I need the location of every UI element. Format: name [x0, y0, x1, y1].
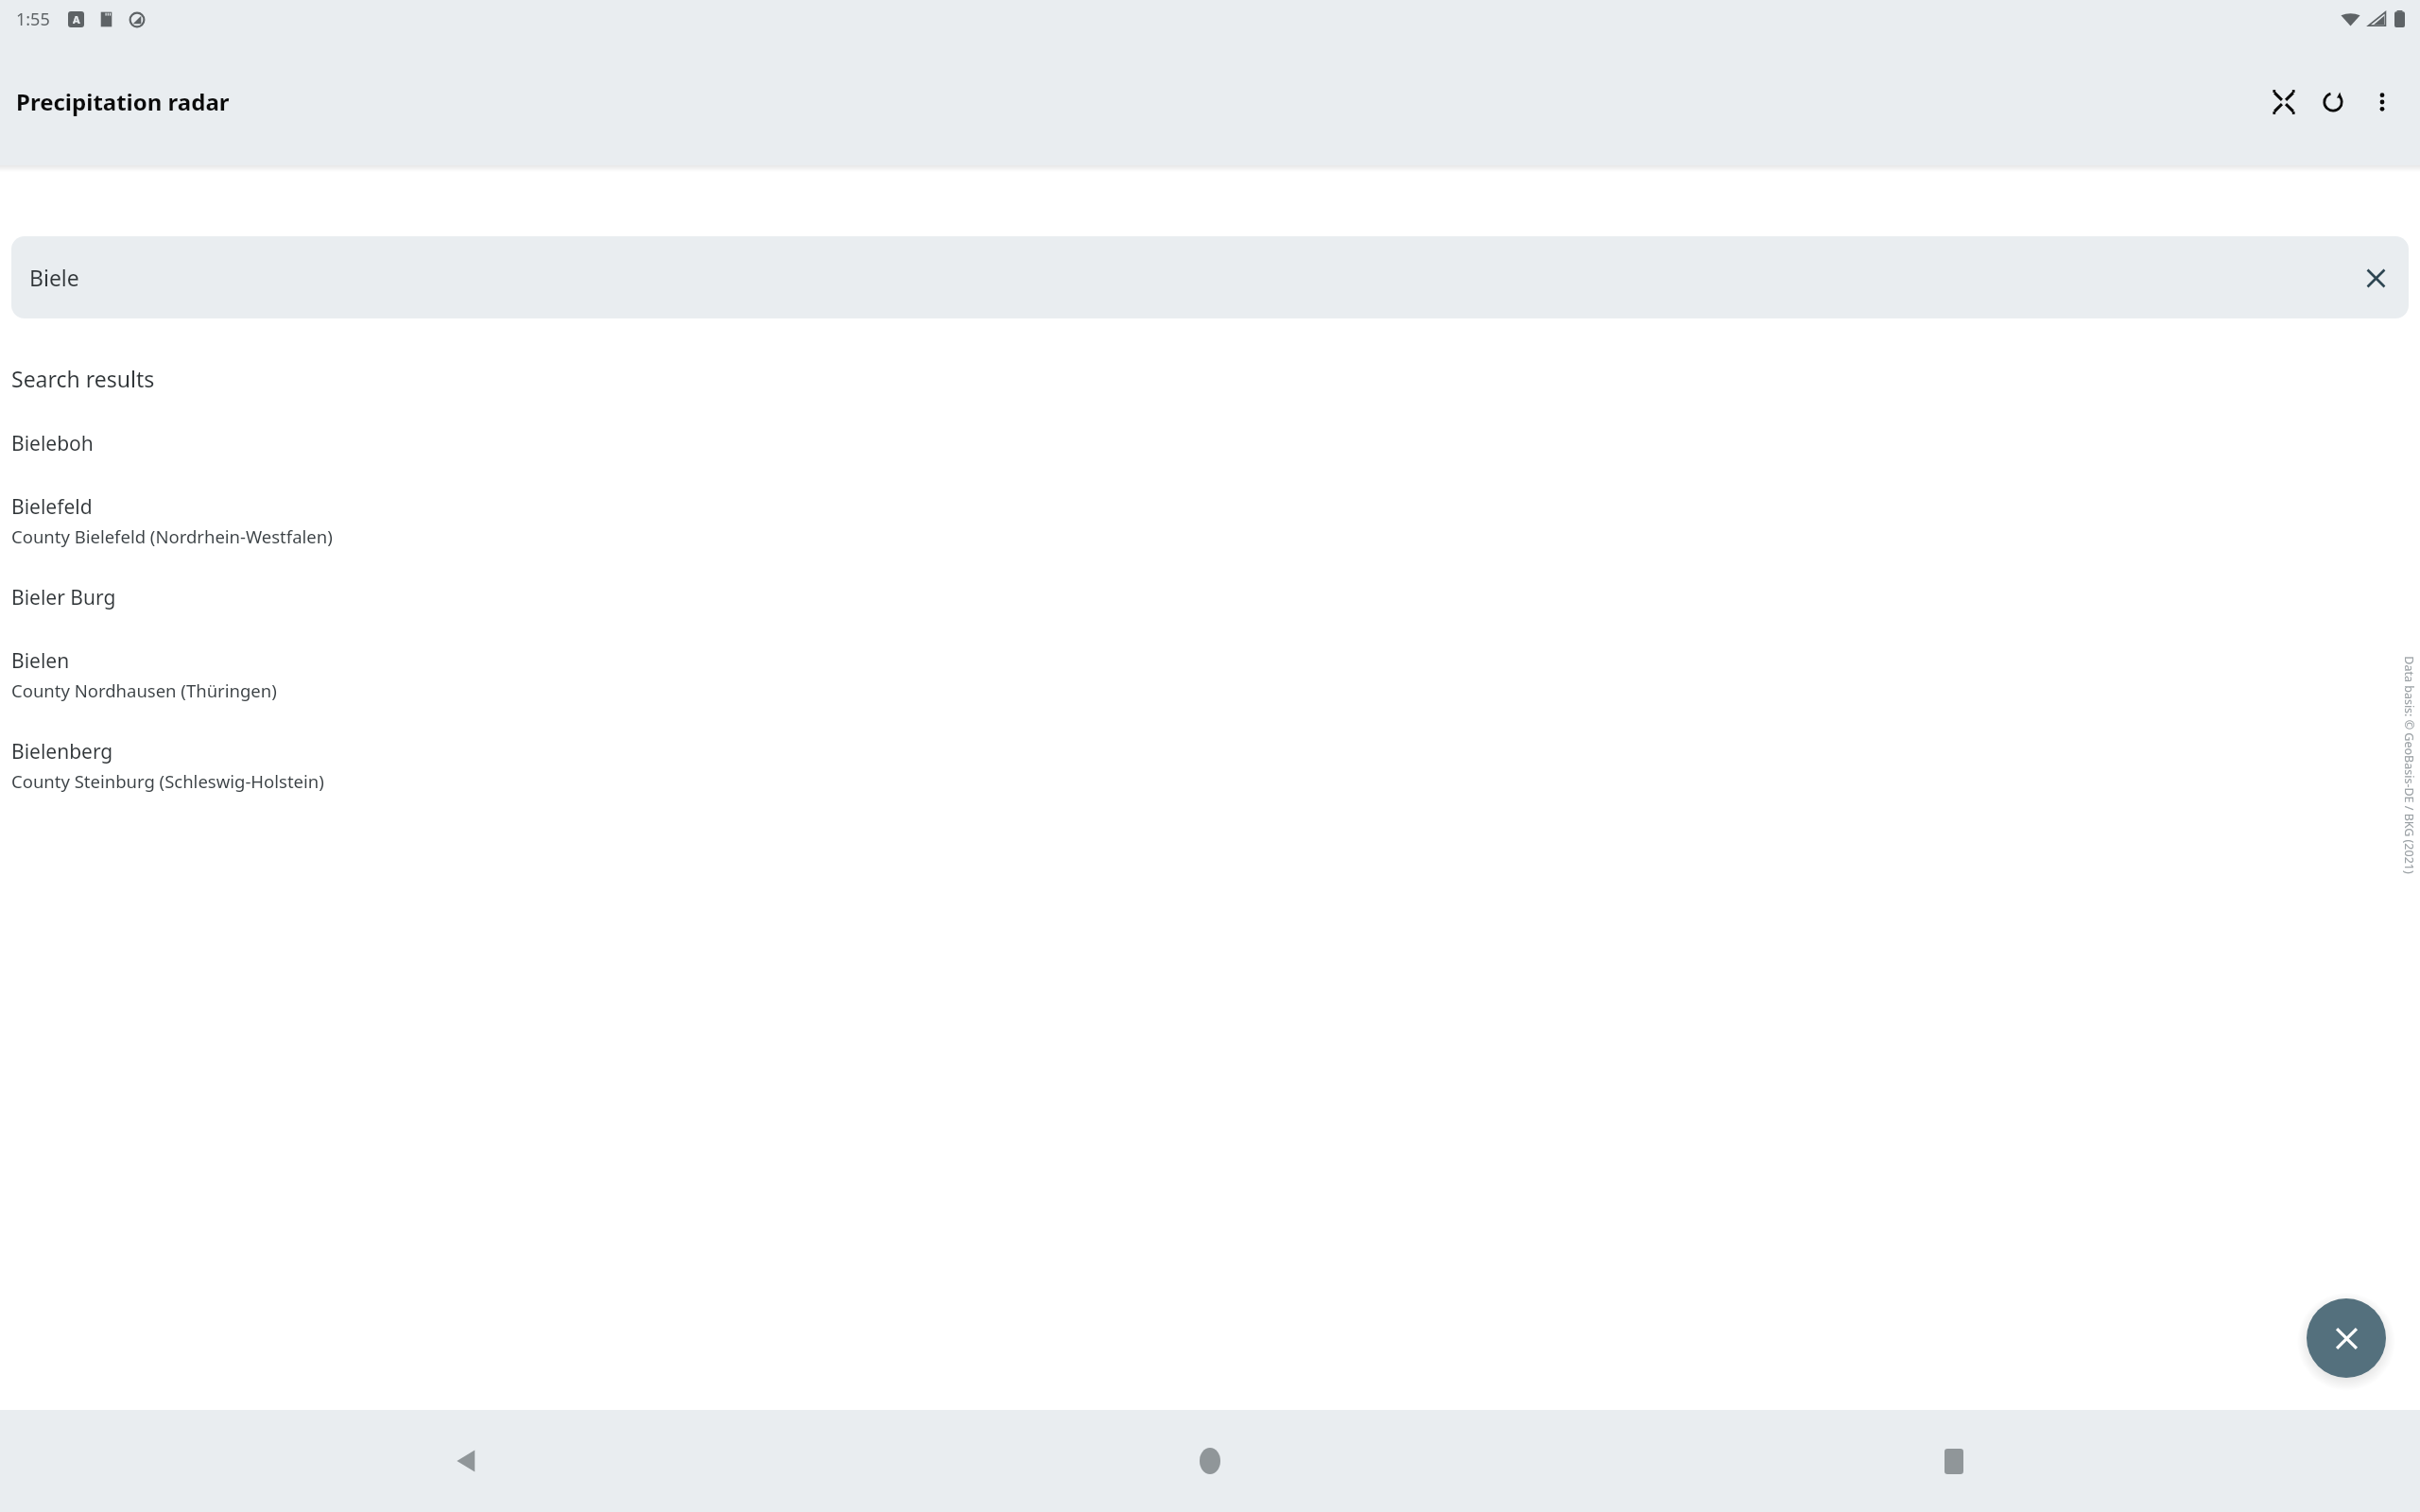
staticText: A	[73, 12, 80, 26]
button[interactable]: Bieleboh	[0, 418, 2420, 470]
button[interactable]: Clear search	[2351, 253, 2400, 302]
staticText: Bielen	[11, 647, 70, 675]
button[interactable]: Recent apps	[1582, 1410, 2325, 1512]
button[interactable]: Bielefeld	[0, 481, 2420, 560]
staticText: Precipitation radar	[16, 86, 230, 117]
button[interactable]: Bielen	[0, 635, 2420, 714]
staticText: Bieleboh	[11, 430, 94, 457]
button[interactable]: Back	[95, 1410, 838, 1512]
staticText: Bielenberg	[11, 738, 113, 765]
button[interactable]: Close search	[2307, 1298, 2386, 1378]
button[interactable]: Bieler Burg	[0, 572, 2420, 624]
staticText: Search results	[11, 364, 155, 393]
button[interactable]: More options	[2358, 77, 2407, 127]
staticText: County Bielefeld (Nordrhein-Westfalen)	[11, 524, 333, 548]
staticText: County Nordhausen (Thüringen)	[11, 679, 277, 702]
button[interactable]: Fullscreen	[2259, 77, 2308, 127]
staticText: 1:55	[16, 8, 50, 31]
button[interactable]: Home	[838, 1410, 1582, 1512]
staticText: Bieler Burg	[11, 584, 116, 611]
button[interactable]: Refresh	[2308, 77, 2358, 127]
staticText: Biele	[29, 263, 79, 292]
staticText: Bielefeld	[11, 493, 93, 521]
staticText: County Steinburg (Schleswig-Holstein)	[11, 769, 324, 793]
button[interactable]: Bielenberg	[0, 726, 2420, 805]
staticText: Data basis: © GeoBasis-DE / BKG (2021)	[2401, 656, 2417, 874]
button[interactable]: Biele	[11, 236, 2409, 318]
